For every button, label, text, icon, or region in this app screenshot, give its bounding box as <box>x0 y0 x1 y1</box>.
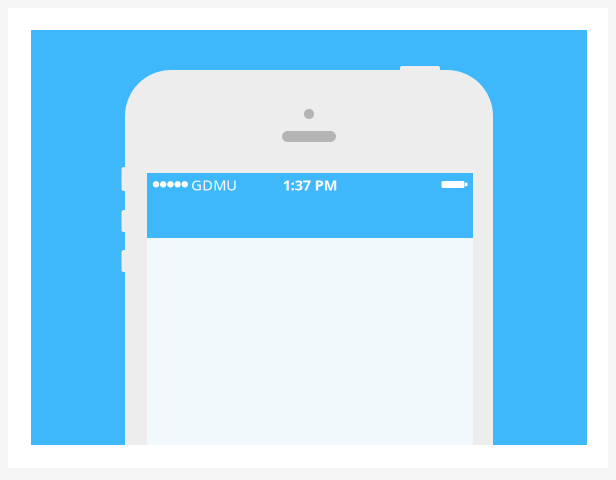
staticText: 1:37 PM <box>282 175 337 194</box>
staticText: GDMU <box>191 175 237 194</box>
